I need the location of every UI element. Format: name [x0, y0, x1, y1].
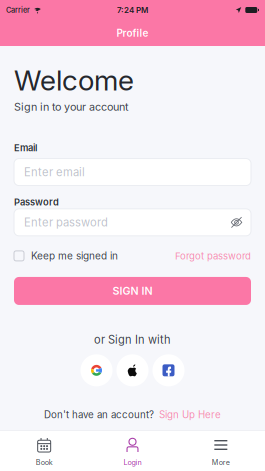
- staticText: Forgot password: [175, 250, 251, 262]
- button[interactable]: Book: [0, 431, 88, 471]
- staticText: More: [212, 458, 230, 467]
- staticText: Profile: [116, 27, 148, 39]
- button[interactable]: SIGN IN: [14, 277, 251, 305]
- staticText: Email: [14, 142, 37, 154]
- button[interactable]: Keep me signed in: [14, 250, 118, 262]
- staticText: 7:24 PM: [117, 5, 148, 15]
- staticText: Welcome: [14, 63, 134, 97]
- staticText: Don't have an account?: [44, 409, 154, 420]
- button[interactable]: Sign in with Apple: [116, 354, 148, 386]
- staticText: Sign in to your account: [14, 100, 129, 113]
- staticText: Password: [14, 197, 59, 208]
- button[interactable]: Show password: [231, 218, 242, 227]
- staticText: Sign Up Here: [159, 409, 221, 420]
- button[interactable]: More: [177, 431, 265, 471]
- button[interactable]: Forgot password: [175, 250, 251, 262]
- staticText: Enter email: [24, 165, 85, 179]
- staticText: or Sign In with: [94, 333, 171, 346]
- staticText: Carrier: [6, 5, 30, 14]
- button[interactable]: Sign in with Facebook: [152, 354, 184, 386]
- button[interactable]: Sign in with Google: [80, 354, 112, 386]
- staticText: SIGN IN: [112, 284, 152, 297]
- staticText: Enter password: [24, 216, 108, 229]
- button[interactable]: Login: [88, 431, 177, 471]
- button[interactable]: Sign Up Here: [159, 409, 221, 420]
- staticText: Login: [123, 458, 141, 467]
- staticText: Keep me signed in: [31, 250, 118, 262]
- staticText: Book: [36, 458, 53, 467]
